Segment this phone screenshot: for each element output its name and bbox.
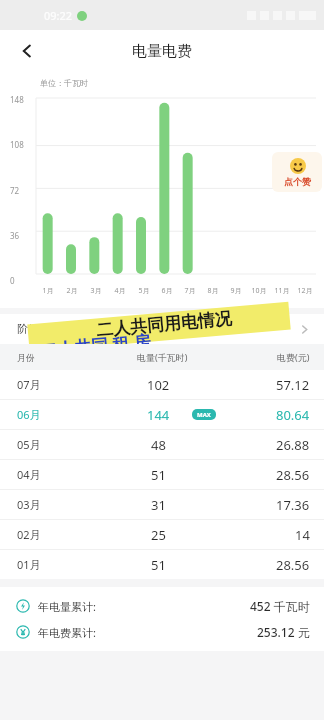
staticText: 电量电费 [132, 42, 192, 61]
staticText: 36 [10, 230, 20, 241]
button[interactable]: 02月 [0, 520, 324, 549]
staticText: 阶梯用电及峰谷分时 [17, 322, 116, 336]
staticText: 57.12 [276, 376, 310, 394]
staticText: 14 [295, 526, 310, 544]
staticText: 电费(元) [277, 351, 310, 363]
staticText: 31 [151, 496, 166, 514]
staticText: 0 [10, 275, 15, 286]
staticText: 5月 [138, 286, 150, 296]
staticText: 二人共同用电情况 [95, 308, 233, 341]
staticText: 02月 [17, 527, 41, 542]
staticText: 04月 [17, 467, 41, 482]
staticText: 8月 [207, 286, 219, 296]
staticText: 144 [147, 406, 170, 424]
staticText: 9月 [230, 286, 242, 296]
staticText: 148 [10, 94, 24, 105]
button[interactable]: 阶梯用电及峰谷分时 [0, 314, 324, 344]
staticText: 6月 [161, 286, 173, 296]
staticText: 102 [147, 376, 170, 394]
staticText: 108 [10, 139, 24, 150]
staticText: 7月 [184, 286, 196, 296]
staticText: 09:22 [44, 8, 73, 23]
staticText: 电量(千瓦时) [137, 351, 188, 363]
button[interactable]: 07月 [0, 370, 324, 399]
staticText: 07月 [17, 377, 41, 392]
staticText: 48 [151, 436, 166, 454]
staticText: 2月 [66, 286, 78, 296]
staticText: 月份 [17, 352, 35, 363]
staticText: 单位：千瓦时 [40, 78, 88, 88]
staticText: 年电费累计: [38, 625, 96, 640]
staticText: 10月 [251, 286, 267, 296]
staticText: 25 [151, 526, 166, 544]
staticText: 05月 [17, 437, 41, 452]
staticText: MAX [197, 411, 211, 419]
button[interactable]: 04月 [0, 460, 324, 489]
staticText: 80.64 [276, 406, 310, 424]
staticText: 51 [151, 466, 166, 484]
staticText: 17.36 [276, 496, 310, 514]
staticText: 26.88 [276, 436, 310, 454]
staticText: 3月 [90, 286, 102, 296]
button[interactable]: 03月 [0, 490, 324, 519]
button[interactable]: 年电量累计: [0, 593, 324, 619]
staticText: 28.56 [276, 466, 310, 484]
staticText: 12月 [297, 286, 313, 296]
staticText: 二人共同 租 房 [39, 329, 152, 362]
staticText: 1月 [42, 286, 54, 296]
staticText: 253.12 元 [257, 624, 310, 640]
staticText: 28.56 [276, 556, 310, 574]
staticText: 06月 [17, 407, 41, 422]
button[interactable]: 05月 [0, 430, 324, 459]
button[interactable]: 年电费累计: [0, 619, 324, 645]
button[interactable]: 06月 [0, 400, 324, 429]
button[interactable]: 01月 [0, 550, 324, 579]
staticText: 51 [151, 556, 166, 574]
button[interactable]: Back [10, 34, 44, 68]
staticText: 4月 [114, 286, 126, 296]
staticText: 点个赞 [284, 176, 311, 187]
staticText: 年电量累计: [38, 599, 96, 614]
staticText: 03月 [17, 497, 41, 512]
staticText: 11月 [274, 286, 290, 296]
staticText: 452 千瓦时 [250, 598, 310, 614]
staticText: 01月 [17, 557, 41, 572]
staticText: 72 [10, 185, 20, 196]
